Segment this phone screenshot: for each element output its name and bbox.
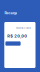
- staticText: Escolha o valor: [16, 27, 31, 29]
- staticText: R$ 20,00: [7, 34, 27, 38]
- staticText: Recarga: [4, 11, 17, 15]
